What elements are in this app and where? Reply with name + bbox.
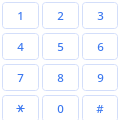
staticText: 6 bbox=[97, 39, 104, 55]
staticText: 1 bbox=[17, 8, 24, 24]
button[interactable]: 8 bbox=[42, 64, 79, 91]
staticText: 2 bbox=[57, 8, 64, 24]
button[interactable]: Pound bbox=[82, 95, 118, 120]
button[interactable]: 1 bbox=[2, 2, 39, 29]
staticText: 9 bbox=[97, 70, 104, 86]
button[interactable]: 6 bbox=[82, 33, 118, 60]
staticText: 3 bbox=[97, 8, 104, 24]
button[interactable]: 0 bbox=[42, 95, 79, 120]
button[interactable]: 9 bbox=[82, 64, 118, 91]
staticText: # bbox=[96, 101, 104, 117]
staticText: 0 bbox=[57, 101, 64, 117]
button[interactable]: 5 bbox=[42, 33, 79, 60]
staticText: 5 bbox=[57, 39, 64, 55]
button[interactable]: 7 bbox=[2, 64, 39, 91]
staticText: 8 bbox=[57, 70, 64, 86]
button[interactable]: 2 bbox=[42, 2, 79, 29]
staticText: 4 bbox=[17, 39, 24, 55]
button[interactable]: 3 bbox=[82, 2, 118, 29]
button[interactable]: Star bbox=[2, 95, 39, 120]
button[interactable]: 4 bbox=[2, 33, 39, 60]
staticText: 7 bbox=[17, 70, 24, 86]
